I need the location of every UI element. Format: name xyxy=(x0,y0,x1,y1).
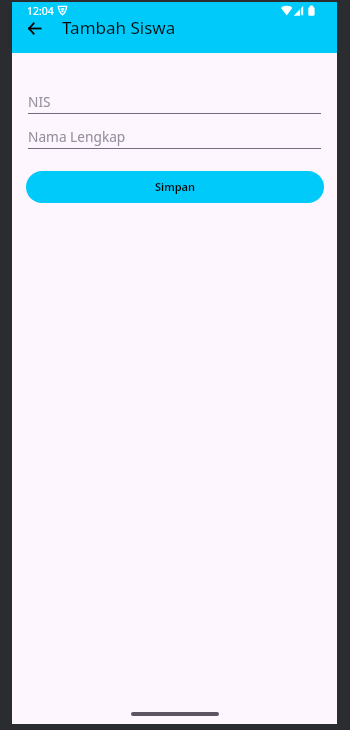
button[interactable]: Simpan xyxy=(26,171,324,203)
button[interactable]: Back xyxy=(18,12,50,44)
button[interactable]: Nama Lengkap xyxy=(28,127,321,149)
button[interactable]: NIS xyxy=(28,92,321,114)
staticText: Nama Lengkap xyxy=(28,127,126,146)
staticText: Simpan xyxy=(155,179,196,194)
staticText: Tambah Siswa xyxy=(62,16,176,39)
staticText: NIS xyxy=(28,92,51,111)
staticText: 12:04 xyxy=(27,4,54,18)
